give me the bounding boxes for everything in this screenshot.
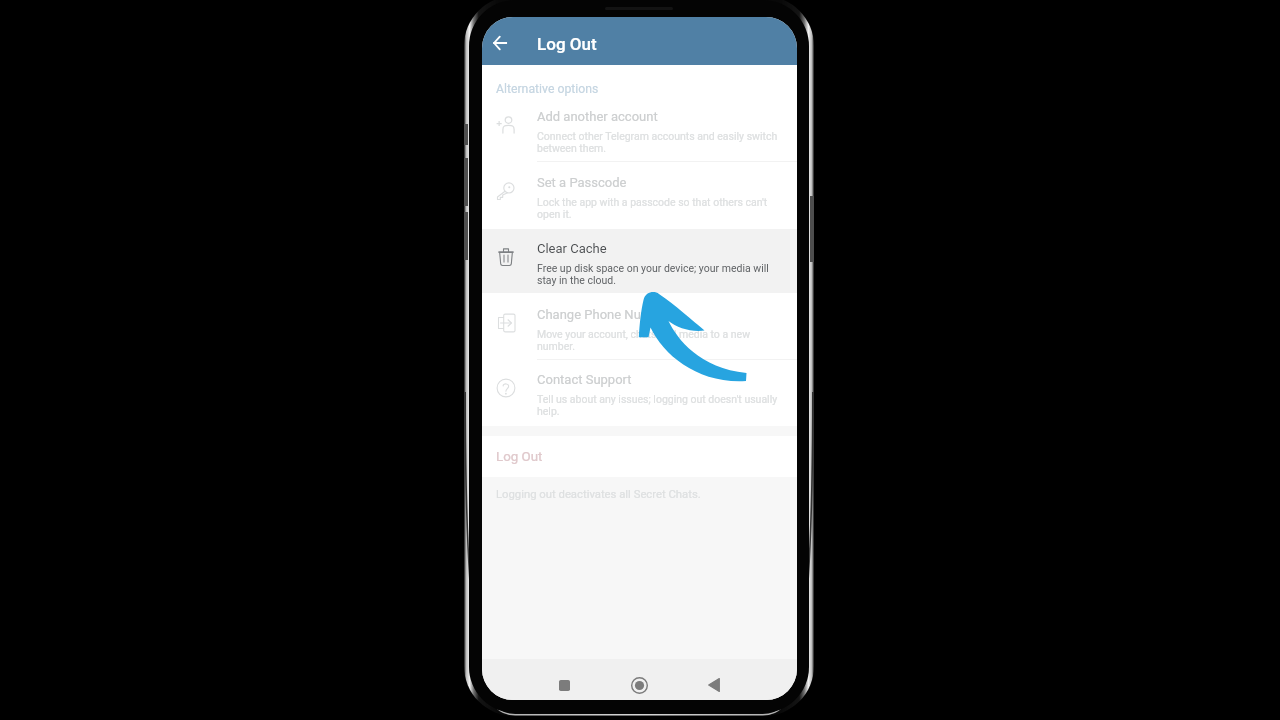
staticText: Connect other Telegram accounts and easi… xyxy=(537,130,781,154)
button[interactable]: Log Out xyxy=(482,436,797,477)
button[interactable]: Change Phone Number xyxy=(482,296,797,362)
staticText: Log Out xyxy=(496,449,543,465)
staticText: Tell us about any issues; logging out do… xyxy=(537,393,781,417)
button[interactable]: Clear Cache xyxy=(482,230,797,296)
staticText: Change Phone Number xyxy=(537,307,671,322)
staticText: Move your account, chats and media to a … xyxy=(537,328,781,352)
staticText: Logging out deactivates all Secret Chats… xyxy=(496,488,701,501)
button[interactable]: Add another account xyxy=(482,98,797,164)
button[interactable]: Back xyxy=(482,23,521,62)
staticText: Add another account xyxy=(537,109,658,124)
button[interactable]: Contact Support xyxy=(482,361,797,427)
staticText: Log Out xyxy=(537,34,597,54)
button[interactable]: Back xyxy=(697,668,731,700)
button[interactable]: Set a Passcode xyxy=(482,164,797,230)
staticText: Lock the app with a passcode so that oth… xyxy=(537,196,781,220)
staticText: Free up disk space on your device; your … xyxy=(537,262,781,286)
staticText: Clear Cache xyxy=(537,241,607,256)
staticText: Contact Support xyxy=(537,372,632,387)
button[interactable]: Recent apps xyxy=(547,668,581,700)
staticText: Set a Passcode xyxy=(537,175,627,190)
button[interactable]: Home xyxy=(622,668,656,700)
staticText: Alternative options xyxy=(496,82,599,96)
